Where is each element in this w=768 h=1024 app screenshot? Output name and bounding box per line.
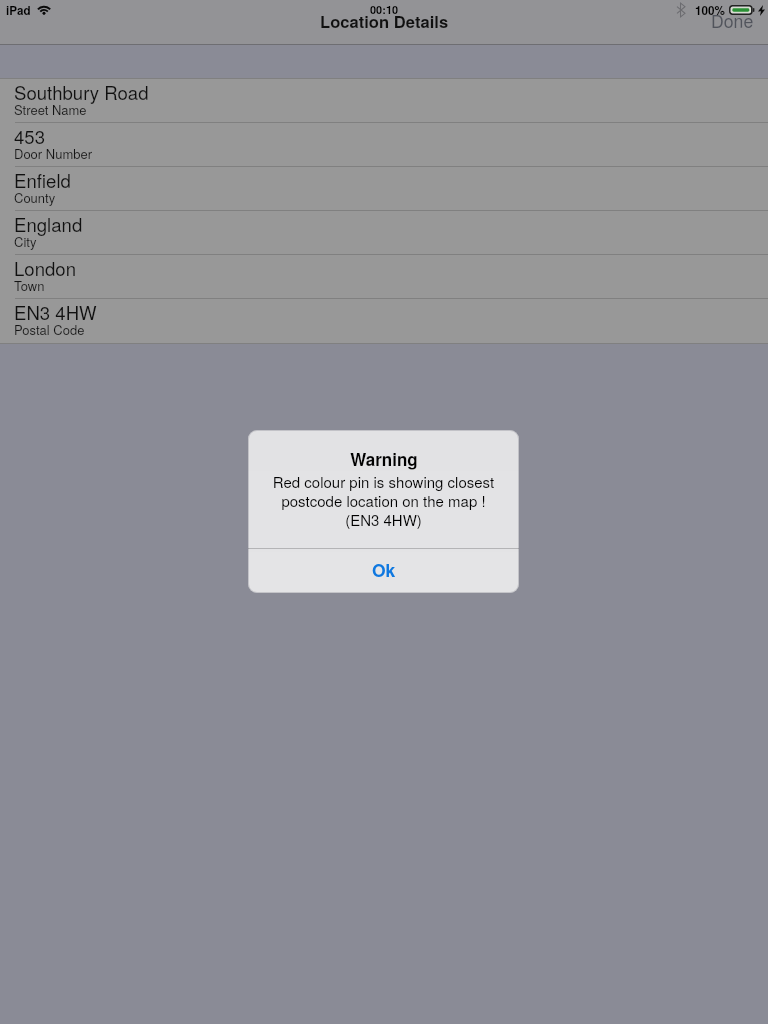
- button[interactable]: England: [0, 211, 768, 255]
- staticText: County: [14, 188, 56, 207]
- other: Bluetooth: [673, 3, 685, 17]
- other: Wi-Fi: [37, 5, 51, 15]
- staticText: Red colour pin is showing closest postco…: [256, 471, 511, 531]
- staticText: England: [14, 211, 83, 238]
- staticText: EN3 4HW: [14, 299, 97, 326]
- staticText: Door Number: [14, 144, 93, 163]
- button[interactable]: 453: [0, 123, 768, 167]
- other: Battery: [729, 5, 755, 15]
- staticText: Done: [711, 8, 754, 33]
- button[interactable]: Done: [697, 2, 768, 39]
- staticText: Warning: [350, 447, 418, 471]
- staticText: 00:10: [370, 2, 399, 18]
- staticText: iPad: [6, 2, 31, 19]
- staticText: Town: [14, 276, 45, 295]
- staticText: 100%: [695, 2, 725, 19]
- staticText: Ok: [372, 557, 396, 582]
- staticText: Enfield: [14, 167, 71, 194]
- button[interactable]: Southbury Road: [0, 79, 768, 123]
- staticText: Street Name: [14, 100, 87, 119]
- button[interactable]: EN3 4HW: [0, 299, 768, 343]
- staticText: Location Details: [320, 9, 449, 33]
- button[interactable]: London: [0, 255, 768, 299]
- button[interactable]: Ok: [248, 549, 519, 593]
- staticText: 453: [14, 123, 46, 150]
- staticText: Postal Code: [14, 320, 85, 339]
- staticText: City: [14, 232, 37, 251]
- button[interactable]: Enfield: [0, 167, 768, 211]
- staticText: London: [14, 255, 77, 282]
- other: Charging: [758, 5, 765, 16]
- staticText: Southbury Road: [14, 79, 149, 106]
